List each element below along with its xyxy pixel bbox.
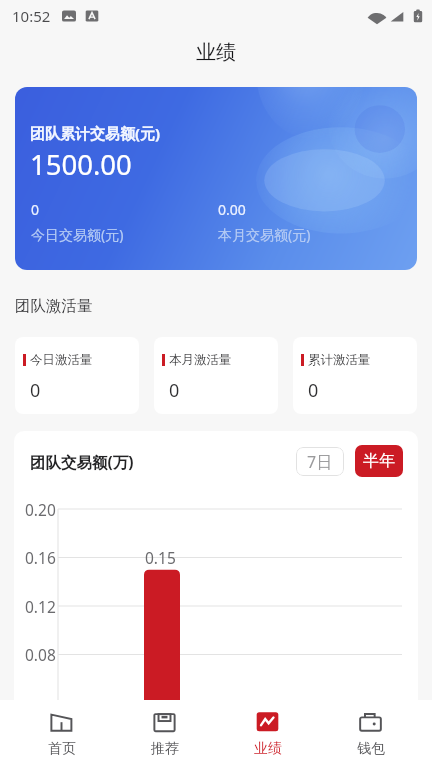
staticText: 0	[30, 378, 41, 403]
staticText: 钱包	[357, 740, 385, 758]
staticText: 0	[308, 378, 319, 403]
staticText: 10:52	[12, 6, 51, 26]
button[interactable]: Home	[10, 700, 113, 768]
staticText: 推荐	[151, 740, 179, 758]
staticText: 0.20	[25, 499, 56, 520]
staticText: 本月交易额(元)	[218, 225, 311, 244]
staticText: 0.08	[25, 644, 56, 665]
staticText: 团队累计交易额(元)	[30, 123, 161, 143]
staticText: 0.16	[25, 547, 56, 568]
staticText: 0.15	[145, 547, 176, 568]
staticText: 团队交易额(万)	[30, 451, 134, 472]
staticText: 0	[169, 378, 180, 403]
staticText: 1500.00	[30, 146, 132, 183]
staticText: 业绩	[196, 40, 236, 65]
button[interactable]: 半年	[355, 445, 403, 477]
staticText: 0.12	[25, 596, 56, 617]
staticText: 首页	[48, 740, 76, 758]
button[interactable]: Performance	[216, 700, 319, 768]
staticText: 0.00	[218, 200, 246, 219]
staticText: 半年	[363, 451, 395, 471]
staticText: 本月激活量	[169, 352, 232, 368]
staticText: 7日	[307, 451, 333, 473]
staticText: 今日交易额(元)	[31, 225, 124, 244]
button[interactable]: 今日激活量	[15, 337, 139, 414]
staticText: 累计激活量	[308, 352, 371, 368]
button[interactable]: Recommend	[113, 700, 216, 768]
staticText: 0	[31, 200, 40, 219]
button[interactable]: 7日	[296, 447, 344, 476]
staticText: 团队激活量	[15, 296, 93, 316]
staticText: 业绩	[254, 740, 282, 758]
staticText: 今日激活量	[30, 352, 93, 368]
button[interactable]: 团队累计交易额(元)	[15, 87, 417, 270]
button[interactable]: 本月激活量	[154, 337, 278, 414]
button[interactable]: 累计激活量	[293, 337, 417, 414]
button[interactable]: Wallet	[319, 700, 422, 768]
